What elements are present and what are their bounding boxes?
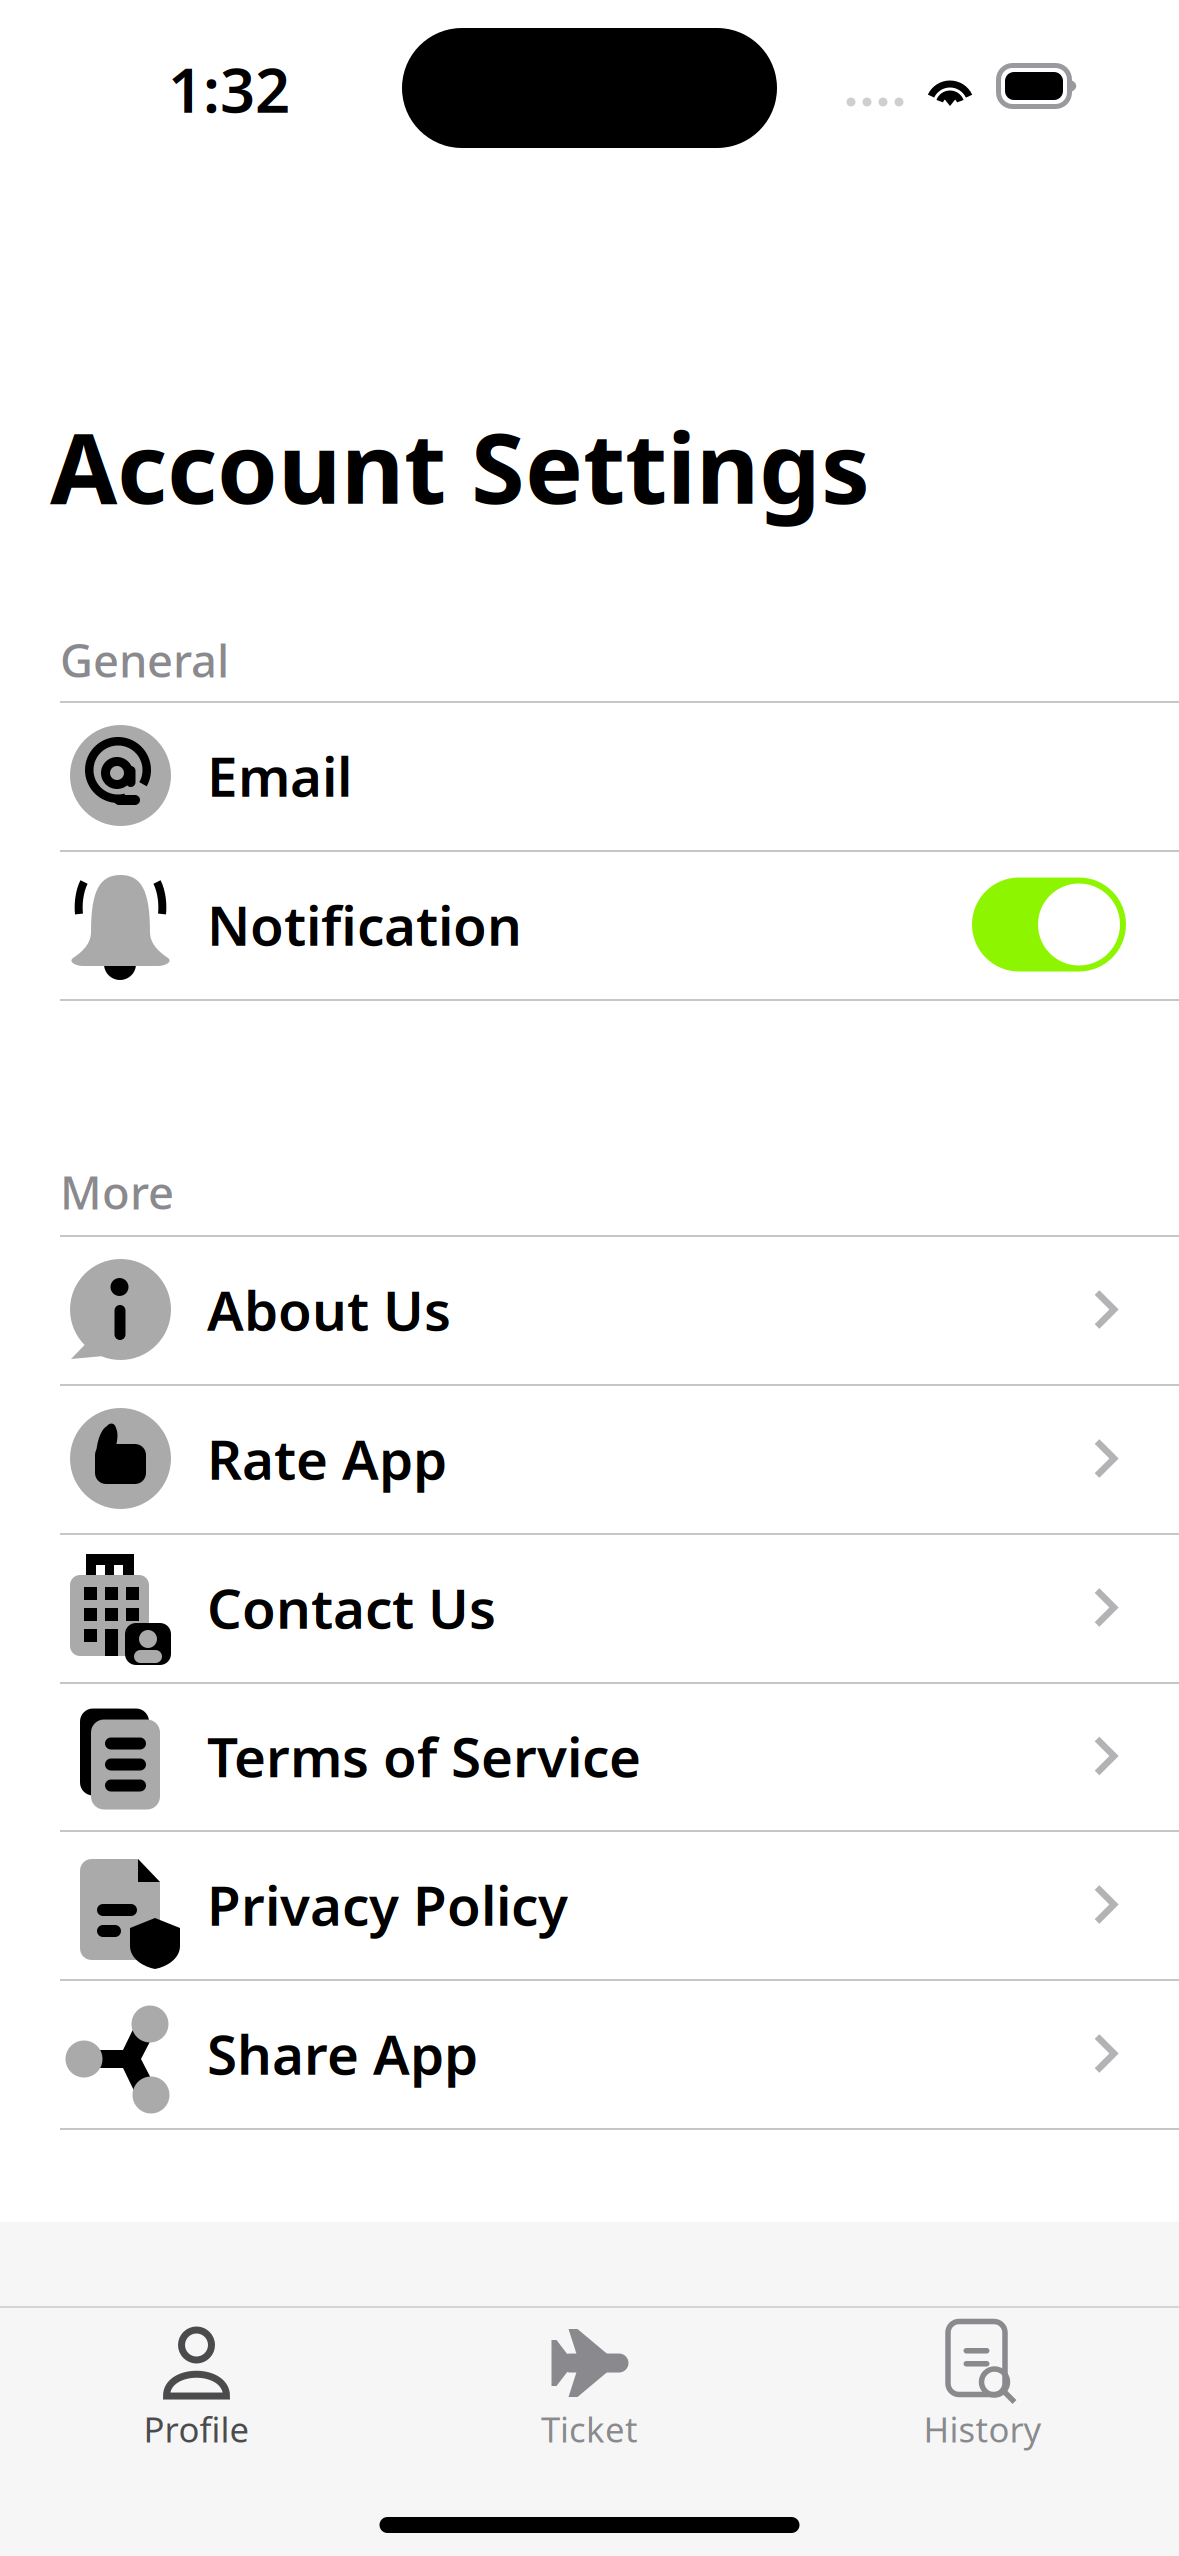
- staticText: About Us: [207, 1273, 451, 1346]
- staticText: Email: [207, 739, 352, 812]
- button[interactable]: Rate App: [0, 1384, 1179, 1533]
- staticText: Ticket: [541, 2406, 638, 2452]
- button[interactable]: About Us: [0, 1235, 1179, 1384]
- staticText: Profile: [143, 2406, 249, 2452]
- button[interactable]: History: [786, 2308, 1179, 2488]
- button[interactable]: Email: [0, 701, 1179, 850]
- staticText: History: [923, 2406, 1041, 2452]
- staticText: Notification: [207, 888, 522, 961]
- staticText: Terms of Service: [207, 1720, 641, 1792]
- button[interactable]: Terms of Service: [0, 1682, 1179, 1830]
- staticText: Share App: [207, 2017, 478, 2090]
- staticText: Rate App: [207, 1422, 447, 1495]
- staticText: General: [60, 630, 229, 690]
- button[interactable]: Contact Us: [0, 1533, 1179, 1682]
- staticText: Privacy Policy: [207, 1868, 568, 1941]
- button[interactable]: Share App: [0, 1979, 1179, 2128]
- button[interactable]: Profile: [0, 2308, 393, 2488]
- staticText: More: [60, 1162, 174, 1222]
- button[interactable]: Notification: [0, 850, 1179, 999]
- staticText: Account Settings: [50, 401, 870, 531]
- staticText: Contact Us: [207, 1571, 496, 1644]
- button[interactable]: Privacy Policy: [0, 1830, 1179, 1979]
- button[interactable]: Ticket: [393, 2308, 786, 2488]
- staticText: 1:32: [168, 48, 290, 130]
